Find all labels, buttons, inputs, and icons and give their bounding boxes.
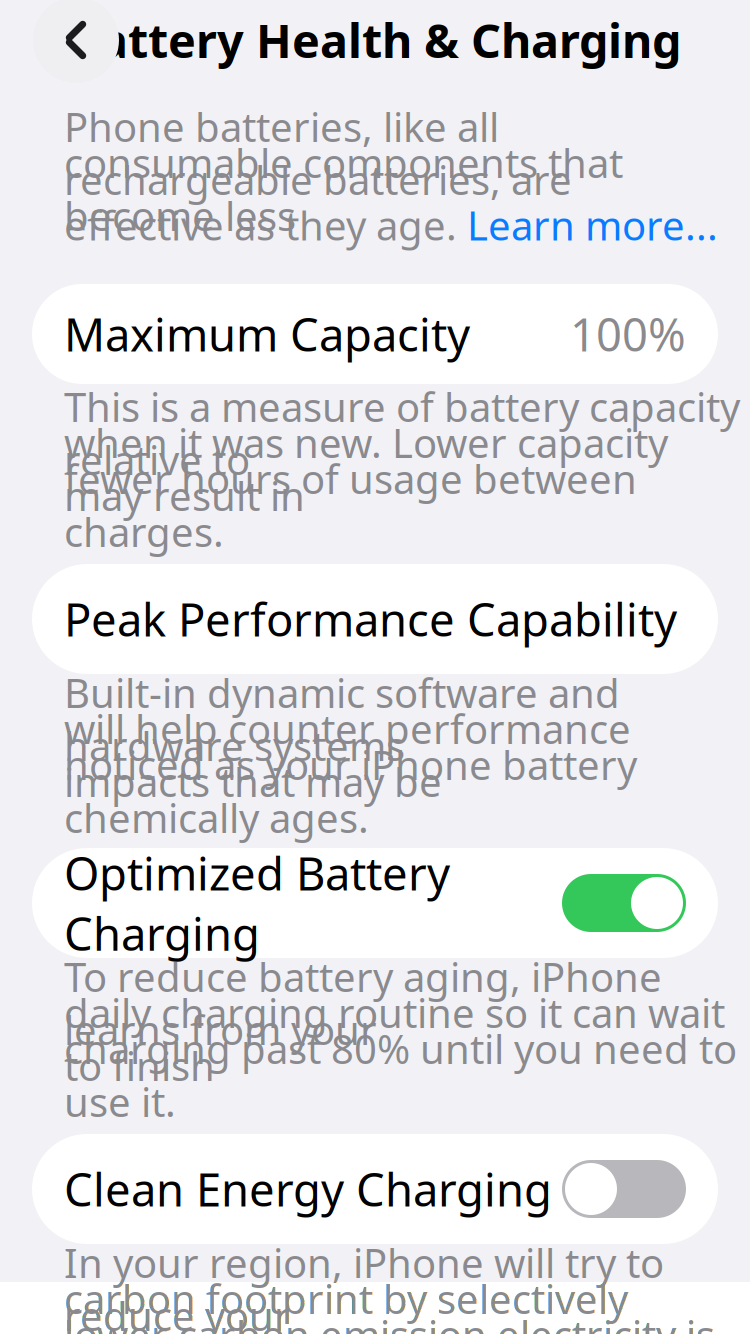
staticText: lower carbon emission electricity is ava…: [64, 1308, 715, 1334]
staticText: In your region, iPhone will try to reduc…: [64, 1236, 664, 1334]
staticText: This is a measure of battery capacity re…: [64, 380, 740, 486]
staticText: Learn more...: [467, 198, 718, 251]
button[interactable]: Learn more...: [467, 198, 718, 251]
staticText: when it was new. Lower capacity may resu…: [64, 416, 668, 522]
staticText: consumable components that become less: [64, 136, 623, 242]
button[interactable]: Back: [33, 0, 119, 83]
staticText: Maximum Capacity: [64, 304, 470, 364]
staticText: Built-in dynamic software and hardware s…: [64, 666, 620, 772]
staticText: Battery Health & Charging: [69, 9, 681, 71]
button[interactable]: Maximum Capacity: [32, 284, 718, 384]
staticText: carbon footprint by selectively charging…: [64, 1272, 628, 1334]
staticText: Peak Performance Capability: [64, 589, 677, 649]
button[interactable]: Peak Performance Capability: [32, 564, 718, 674]
staticText: charging past 80% until you need to use …: [64, 1022, 737, 1128]
staticText: daily charging routine so it can wait to…: [64, 986, 725, 1092]
staticText: effective as they age.: [64, 198, 467, 251]
staticText: fewer hours of usage between charges.: [64, 452, 637, 558]
button[interactable]: Optimized Battery Charging: [32, 848, 718, 958]
staticText: 100%: [570, 304, 686, 364]
staticText: noticed as your iPhone battery chemicall…: [64, 738, 637, 844]
staticText: To reduce battery aging, iPhone learns f…: [64, 950, 662, 1056]
staticText: Clean Energy Charging: [64, 1159, 552, 1219]
staticText: will help counter performance impacts th…: [64, 702, 631, 808]
button[interactable]: Clean Energy Charging: [32, 1134, 718, 1244]
staticText: Optimized Battery Charging: [64, 843, 450, 963]
staticText: Phone batteries, like all rechargeable b…: [64, 100, 572, 206]
